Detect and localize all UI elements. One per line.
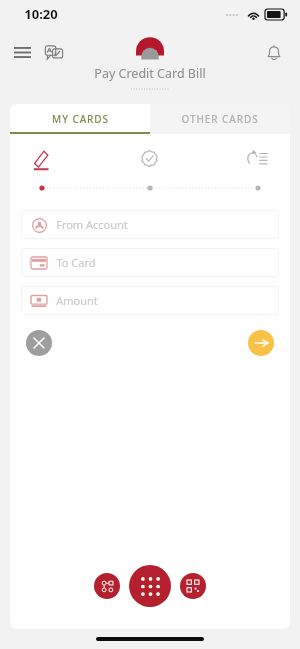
button[interactable]: Amount	[21, 286, 279, 315]
button[interactable]: OTHER CARDS	[150, 104, 290, 134]
button[interactable]: Language	[38, 36, 70, 68]
staticText: MY CARDS	[52, 112, 109, 126]
staticText: To Card	[56, 255, 96, 270]
staticText: 10:20	[24, 5, 58, 23]
button[interactable]: Menu	[6, 36, 38, 68]
button[interactable]: MY CARDS	[10, 104, 150, 134]
button[interactable]: Cancel	[26, 330, 52, 356]
button[interactable]: Next	[248, 330, 274, 356]
button[interactable]: Menu grid	[129, 565, 171, 607]
button[interactable]: From Account	[21, 210, 279, 239]
button[interactable]: To Card	[21, 248, 279, 277]
staticText: OTHER CARDS	[181, 112, 259, 126]
staticText: Pay Credit Card Bill	[94, 65, 206, 82]
button[interactable]: Scan QR	[180, 573, 206, 599]
staticText: Amount	[56, 293, 98, 308]
button[interactable]: Transfers	[94, 573, 120, 599]
staticText: From Account	[56, 217, 128, 232]
button[interactable]: Notifications	[258, 36, 290, 68]
